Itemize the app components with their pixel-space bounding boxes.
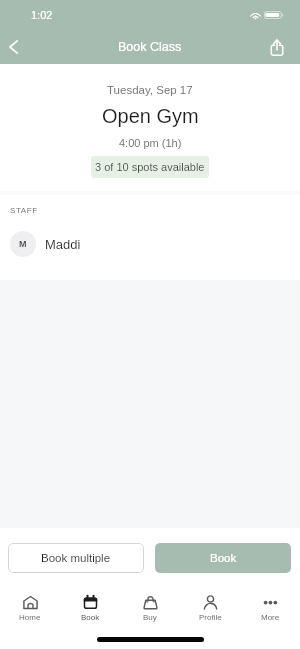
staticText: Buy [143, 613, 157, 622]
staticText: M [19, 239, 27, 249]
staticText: More [261, 613, 280, 622]
staticText: Tuesday, Sep 17 [107, 84, 193, 97]
button[interactable]: Book [60, 579, 120, 628]
staticText: Book Class [118, 40, 182, 54]
button[interactable]: Share [265, 30, 289, 64]
staticText: Book [210, 552, 237, 565]
button[interactable]: Book multiple [8, 543, 144, 573]
staticText: Open Gym [102, 105, 199, 127]
button[interactable]: Home [0, 579, 60, 628]
staticText: 4:00 pm (1h) [119, 137, 182, 149]
staticText: Home [19, 613, 41, 622]
staticText: STAFF [10, 206, 38, 215]
staticText: 3 of 10 spots available [95, 161, 205, 173]
button[interactable]: Book [155, 543, 291, 573]
staticText: 1:02 [31, 9, 53, 21]
staticText: Profile [199, 613, 222, 622]
staticText: Maddi [45, 237, 81, 252]
button[interactable]: More [240, 579, 300, 628]
button[interactable]: Back [0, 30, 26, 64]
staticText: Book [81, 613, 100, 622]
button[interactable]: Profile [180, 579, 240, 628]
button[interactable]: Buy [120, 579, 180, 628]
button[interactable]: M [0, 231, 300, 257]
staticText: Book multiple [41, 552, 111, 565]
